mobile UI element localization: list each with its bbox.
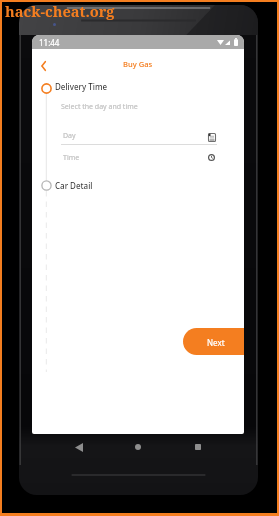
button[interactable]: Car Detail: [41, 178, 93, 192]
staticText: Delivery Time: [55, 81, 108, 92]
button[interactable]: Pick time: [208, 154, 215, 161]
staticText: hack-cheat.org: [5, 1, 115, 21]
staticText: Day: [63, 131, 76, 141]
button[interactable]: Back: [72, 440, 86, 454]
button[interactable]: Recent apps: [191, 440, 205, 454]
button[interactable]: Next: [183, 328, 244, 355]
button[interactable]: Pick day: [207, 132, 217, 142]
staticText: Car Detail: [55, 180, 93, 191]
button[interactable]: Delivery Time: [41, 79, 108, 93]
staticText: Next: [207, 337, 225, 348]
staticText: Time: [63, 153, 80, 163]
staticText: 11:44: [39, 37, 60, 48]
button[interactable]: Home: [131, 440, 145, 454]
staticText: Select the day and time: [61, 102, 138, 112]
button[interactable]: Back: [32, 55, 54, 77]
staticText: Buy Gas: [123, 59, 153, 69]
